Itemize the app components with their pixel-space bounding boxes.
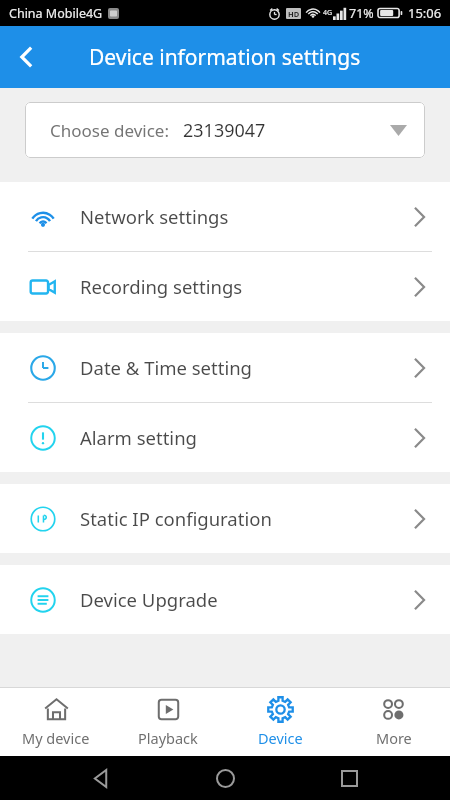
staticText: Device xyxy=(258,728,303,748)
button[interactable]: Home xyxy=(203,756,247,800)
staticText: Network settings xyxy=(80,204,229,229)
button[interactable]: More xyxy=(337,688,450,756)
button[interactable]: Recents xyxy=(327,756,371,800)
staticText: 23139047 xyxy=(183,118,266,143)
staticText: Static IP configuration xyxy=(80,506,272,531)
button[interactable]: Network settings xyxy=(0,182,450,251)
staticText: My device xyxy=(22,728,90,748)
staticText: 4G xyxy=(323,8,333,18)
button[interactable]: Device xyxy=(224,688,337,756)
staticText: More xyxy=(376,728,412,748)
button[interactable]: My device xyxy=(0,688,112,756)
button[interactable]: Recording settings xyxy=(0,252,450,321)
button[interactable]: Date & Time setting xyxy=(0,333,450,402)
staticText: Date & Time setting xyxy=(80,355,252,380)
staticText: 15:06 xyxy=(408,4,442,22)
staticText: 71% xyxy=(349,5,374,22)
button[interactable]: Device Upgrade xyxy=(0,565,450,634)
staticText: China Mobile4G xyxy=(9,5,103,22)
button[interactable]: Choose device: xyxy=(25,102,425,158)
button[interactable]: Playback xyxy=(112,688,224,756)
button[interactable]: Static IP configuration xyxy=(0,484,450,553)
staticText: Device information settings xyxy=(89,43,361,72)
button[interactable]: Alarm setting xyxy=(0,403,450,472)
button[interactable]: Back xyxy=(80,756,124,800)
staticText: Recording settings xyxy=(80,274,243,299)
staticText: Device Upgrade xyxy=(80,587,218,612)
staticText: HD xyxy=(288,9,300,19)
staticText: Playback xyxy=(138,728,198,748)
staticText: Alarm setting xyxy=(80,425,197,450)
staticText: Choose device: xyxy=(50,119,169,142)
button[interactable]: Back xyxy=(0,30,54,84)
